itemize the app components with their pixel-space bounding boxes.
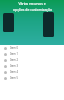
- button[interactable]: Item 0: [0, 45, 64, 51]
- button[interactable]: Item 2: [0, 57, 64, 63]
- staticText: Item 4: [10, 70, 18, 74]
- staticText: opções de customização: [13, 7, 52, 12]
- button[interactable]: Item 5: [0, 75, 64, 81]
- button[interactable]: Item 1: [0, 51, 64, 57]
- staticText: Item 2: [10, 58, 18, 62]
- staticText: Item 3: [10, 64, 18, 68]
- staticText: Item 0: [10, 46, 18, 50]
- button[interactable]: Item 3: [0, 63, 64, 69]
- staticText: Item 1: [10, 52, 18, 56]
- staticText: Item 5: [10, 76, 18, 80]
- staticText: Vários recursos e: [18, 1, 46, 6]
- button[interactable]: Item 4: [0, 69, 64, 75]
